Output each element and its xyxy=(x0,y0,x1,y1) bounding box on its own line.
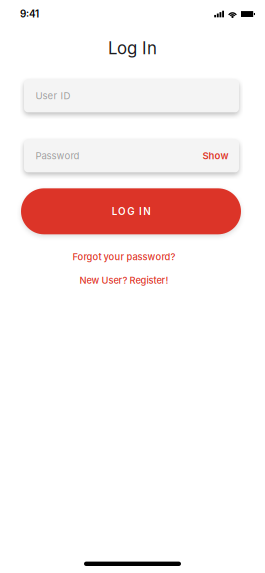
staticText: User ID xyxy=(35,90,70,102)
staticText: Password xyxy=(35,150,79,162)
button[interactable]: New User? Register! xyxy=(79,275,168,286)
staticText: LOG IN xyxy=(112,205,150,217)
staticText: New User? Register! xyxy=(79,275,168,286)
button[interactable]: Show xyxy=(202,150,228,162)
staticText: Show xyxy=(202,150,228,162)
staticText: Log In xyxy=(108,38,157,58)
staticText: Forgot your password? xyxy=(72,251,175,263)
button[interactable]: Forgot your password? xyxy=(72,251,175,263)
staticText: 9:41 xyxy=(20,8,39,20)
button[interactable]: LOG IN xyxy=(21,188,241,234)
